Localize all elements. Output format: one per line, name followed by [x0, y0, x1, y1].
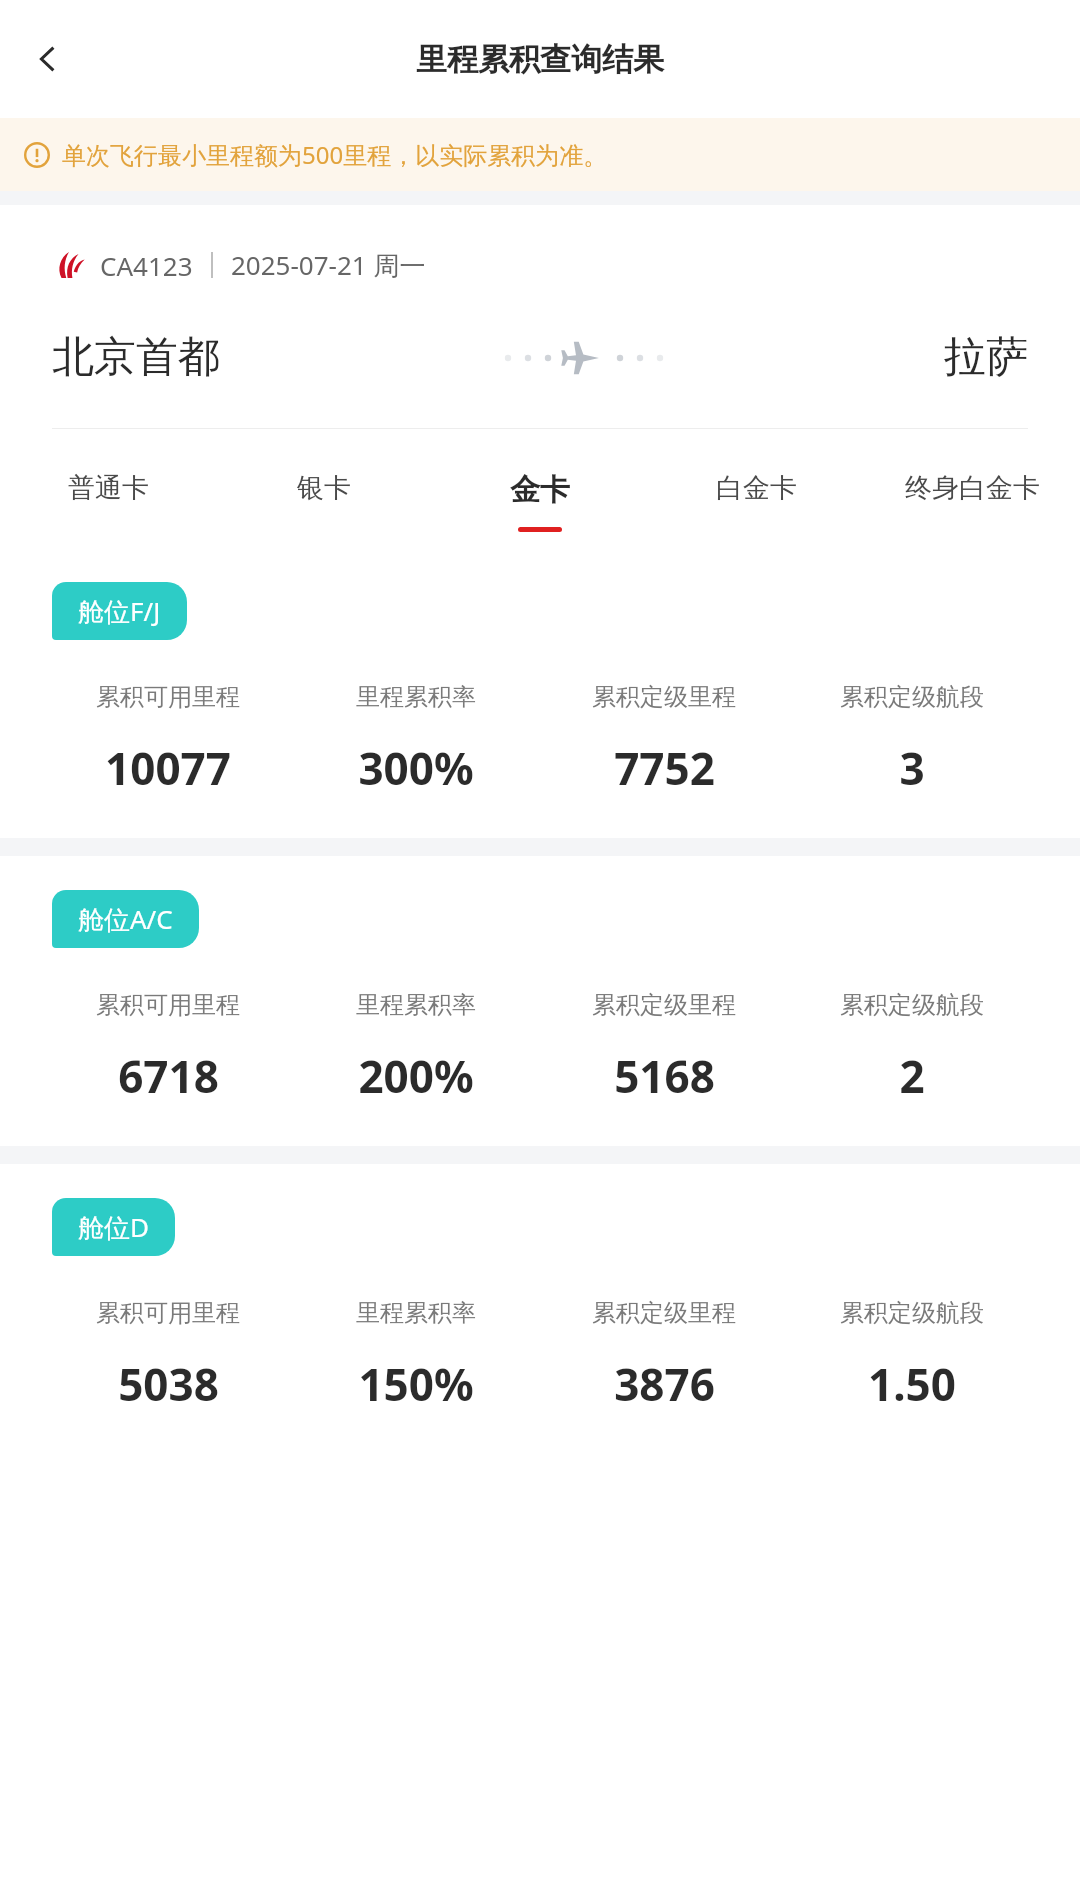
button[interactable]: 普通卡 [0, 465, 216, 534]
staticText: 累积可用里程 [96, 682, 240, 712]
staticText: CA4123 [100, 248, 193, 283]
staticText: 7752 [614, 738, 715, 798]
staticText: 银卡 [297, 471, 351, 505]
staticText: 里程累积查询结果 [416, 40, 664, 79]
button[interactable]: 银卡 [216, 465, 432, 534]
staticText: 累积可用里程 [96, 1298, 240, 1328]
staticText: 6718 [118, 1046, 219, 1106]
staticText: 终身白金卡 [905, 471, 1040, 505]
staticText: 累积定级航段 [840, 1298, 984, 1328]
staticText: 200% [358, 1046, 474, 1106]
staticText: 舱位F/J [78, 593, 161, 629]
staticText: 5038 [118, 1354, 219, 1414]
button[interactable]: 终身白金卡 [864, 465, 1080, 534]
staticText: 金卡 [510, 471, 570, 509]
staticText: 累积定级航段 [840, 990, 984, 1020]
staticText: 白金卡 [716, 471, 797, 505]
staticText: 单次飞行最小里程额为500里程，以实际累积为准。 [62, 138, 608, 171]
staticText: 2 [899, 1046, 925, 1106]
staticText: 累积定级里程 [592, 682, 736, 712]
staticText: 里程累积率 [356, 1298, 476, 1328]
staticText: 累积定级航段 [840, 682, 984, 712]
staticText: 里程累积率 [356, 990, 476, 1020]
staticText: 累积可用里程 [96, 990, 240, 1020]
staticText: 2025-07-21 周一 [231, 247, 426, 283]
staticText: 拉萨 [944, 331, 1028, 384]
staticText: 3876 [614, 1354, 715, 1414]
staticText: 150% [358, 1354, 474, 1414]
staticText: 10077 [105, 738, 231, 798]
staticText: 北京首都 [52, 331, 220, 384]
staticText: 舱位D [78, 1209, 149, 1245]
staticText: 舱位A/C [78, 901, 173, 937]
staticText: 普通卡 [68, 471, 149, 505]
staticText: 累积定级里程 [592, 990, 736, 1020]
button[interactable]: Back [18, 29, 78, 89]
button[interactable]: 金卡 [432, 465, 648, 538]
staticText: 累积定级里程 [592, 1298, 736, 1328]
staticText: 3 [899, 738, 925, 798]
button[interactable]: 白金卡 [648, 465, 864, 534]
staticText: 里程累积率 [356, 682, 476, 712]
staticText: 1.50 [868, 1354, 956, 1414]
staticText: 300% [358, 738, 474, 798]
staticText: 5168 [614, 1046, 715, 1106]
